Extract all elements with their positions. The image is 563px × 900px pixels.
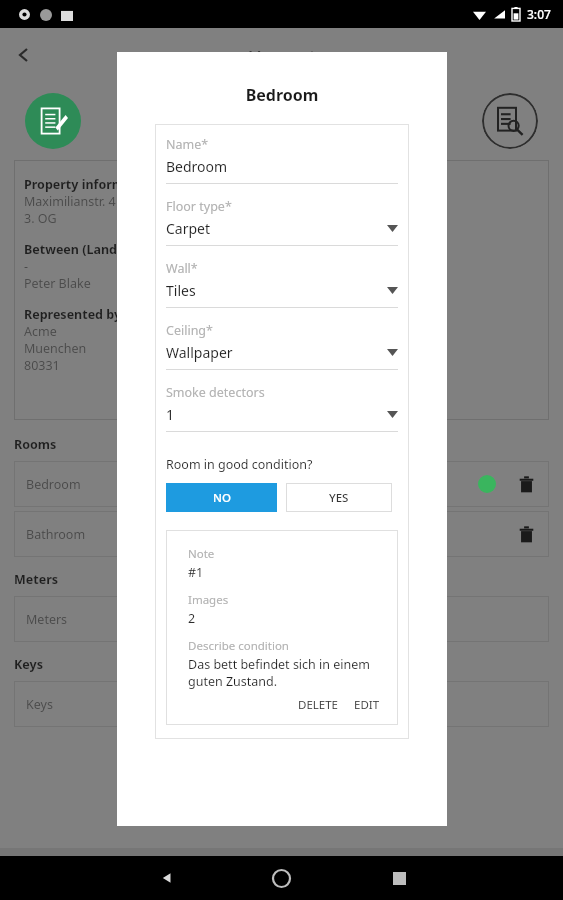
staticText: Images <box>188 592 229 608</box>
staticText: Bedroom <box>117 84 447 106</box>
staticText: Wallpaper <box>166 343 387 362</box>
staticText: #1 <box>188 564 204 581</box>
staticText: Property information <box>24 176 157 193</box>
button[interactable]: Home <box>273 870 290 887</box>
staticText: Muenchen <box>24 340 87 357</box>
staticText: 2 <box>188 610 196 627</box>
button[interactable]: DELETE <box>294 695 342 715</box>
button[interactable]: EDIT <box>350 695 384 715</box>
button[interactable]: Drafts <box>187 857 375 891</box>
staticText: - <box>24 258 29 275</box>
staticText: Bedroom <box>26 476 81 493</box>
button[interactable]: Meters <box>14 596 549 642</box>
staticText: Ceiling* <box>166 322 213 339</box>
staticText: NO <box>213 490 231 506</box>
staticText: Between (Landlord) <box>24 241 146 258</box>
staticText: Carpet <box>166 219 387 238</box>
staticText: Keys <box>26 696 53 713</box>
button[interactable]: NO <box>166 483 277 512</box>
staticText: Meters <box>14 571 59 588</box>
staticText: Smoke detectors <box>166 384 265 401</box>
staticText: Floor type* <box>166 198 232 215</box>
staticText: Meters <box>26 611 68 628</box>
staticText: Drafts <box>266 877 297 891</box>
staticText: Bedroom <box>166 157 398 176</box>
button[interactable]: Note <box>166 530 398 725</box>
staticText: Note <box>188 546 215 562</box>
staticText: YES <box>329 490 349 506</box>
staticText: Move-out <box>248 45 316 65</box>
staticText: 80331 <box>24 357 60 374</box>
staticText: 1 <box>166 405 387 424</box>
button[interactable]: Protocols <box>0 857 187 891</box>
staticText: Acme <box>24 323 57 340</box>
staticText: Maximilianstr. 4 <box>24 193 116 210</box>
staticText: Bathroom <box>26 526 86 543</box>
staticText: EDIT <box>354 697 380 713</box>
staticText: 3:07 <box>527 6 551 22</box>
button[interactable]: Back <box>159 870 175 886</box>
staticText: Name* <box>166 136 209 153</box>
button[interactable]: YES <box>286 483 392 512</box>
button[interactable]: Keys <box>14 681 549 727</box>
staticText: Describe condition <box>188 638 289 654</box>
button[interactable]: Bathroom <box>14 511 549 557</box>
button[interactable]: Bedroom <box>14 461 549 507</box>
button[interactable]: Completed <box>375 857 563 891</box>
staticText: Represented by <box>24 306 122 323</box>
staticText: Keys <box>14 656 43 673</box>
staticText: Rooms <box>14 436 57 453</box>
staticText: Room in good condition? <box>166 456 313 473</box>
staticText: 3. OG <box>24 210 57 227</box>
staticText: DELETE <box>298 697 338 713</box>
staticText: Wall* <box>166 260 198 277</box>
staticText: Tiles <box>166 281 387 300</box>
staticText: Das bett befindet sich in einem guten Zu… <box>188 656 384 689</box>
staticText: Peter Blake <box>24 275 91 292</box>
